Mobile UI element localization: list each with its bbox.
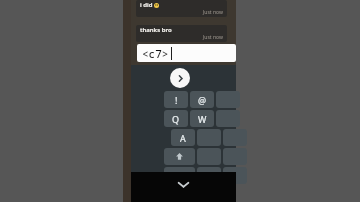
- button[interactable]: Next: [170, 68, 190, 88]
- button[interactable]: [223, 167, 247, 184]
- staticText: thanks bro: [140, 26, 172, 34]
- staticText: Q: [172, 113, 180, 125]
- staticText: ?123: [170, 170, 190, 182]
- button[interactable]: A: [171, 129, 195, 146]
- button[interactable]: Hide keyboard: [177, 181, 190, 188]
- button[interactable]: Q: [164, 110, 188, 127]
- staticText: A: [180, 132, 186, 144]
- staticText: @: [198, 94, 207, 106]
- staticText: !: [175, 94, 178, 106]
- button[interactable]: [197, 129, 221, 146]
- button[interactable]: @: [190, 91, 214, 108]
- staticText: <c7>: [142, 46, 169, 61]
- button[interactable]: !: [164, 91, 188, 108]
- staticText: i did: [140, 1, 153, 9]
- button[interactable]: W: [190, 110, 214, 127]
- button[interactable]: [197, 167, 221, 184]
- button[interactable]: <c7>: [137, 44, 236, 62]
- staticText: W: [198, 113, 207, 125]
- button[interactable]: ?123: [164, 167, 195, 184]
- staticText: Just now: [203, 9, 223, 16]
- button[interactable]: i did: [136, 0, 227, 17]
- button[interactable]: [197, 148, 221, 165]
- staticText: Just now: [203, 34, 223, 41]
- button[interactable]: Shift: [164, 148, 195, 165]
- button[interactable]: thanks bro: [136, 25, 227, 42]
